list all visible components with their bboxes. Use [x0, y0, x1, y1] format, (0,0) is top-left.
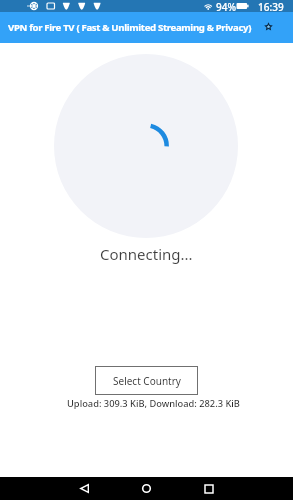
staticText: Select Country	[113, 374, 181, 388]
button[interactable]: Recents	[194, 477, 224, 500]
staticText: 16:39	[258, 0, 284, 12]
button[interactable]: Back	[69, 477, 99, 500]
button[interactable]: Favorite	[255, 13, 281, 39]
button[interactable]	[54, 54, 238, 238]
staticText: Connecting...	[100, 244, 193, 264]
staticText: VPN for Fire TV ( Fast & Unlimited Strea…	[8, 21, 267, 34]
staticText: 94%	[216, 0, 236, 12]
button[interactable]: Home	[131, 477, 161, 500]
staticText: Upload: 309.3 KiB, Download: 282.3 KiB	[67, 397, 240, 410]
button[interactable]: Select Country	[95, 366, 198, 395]
